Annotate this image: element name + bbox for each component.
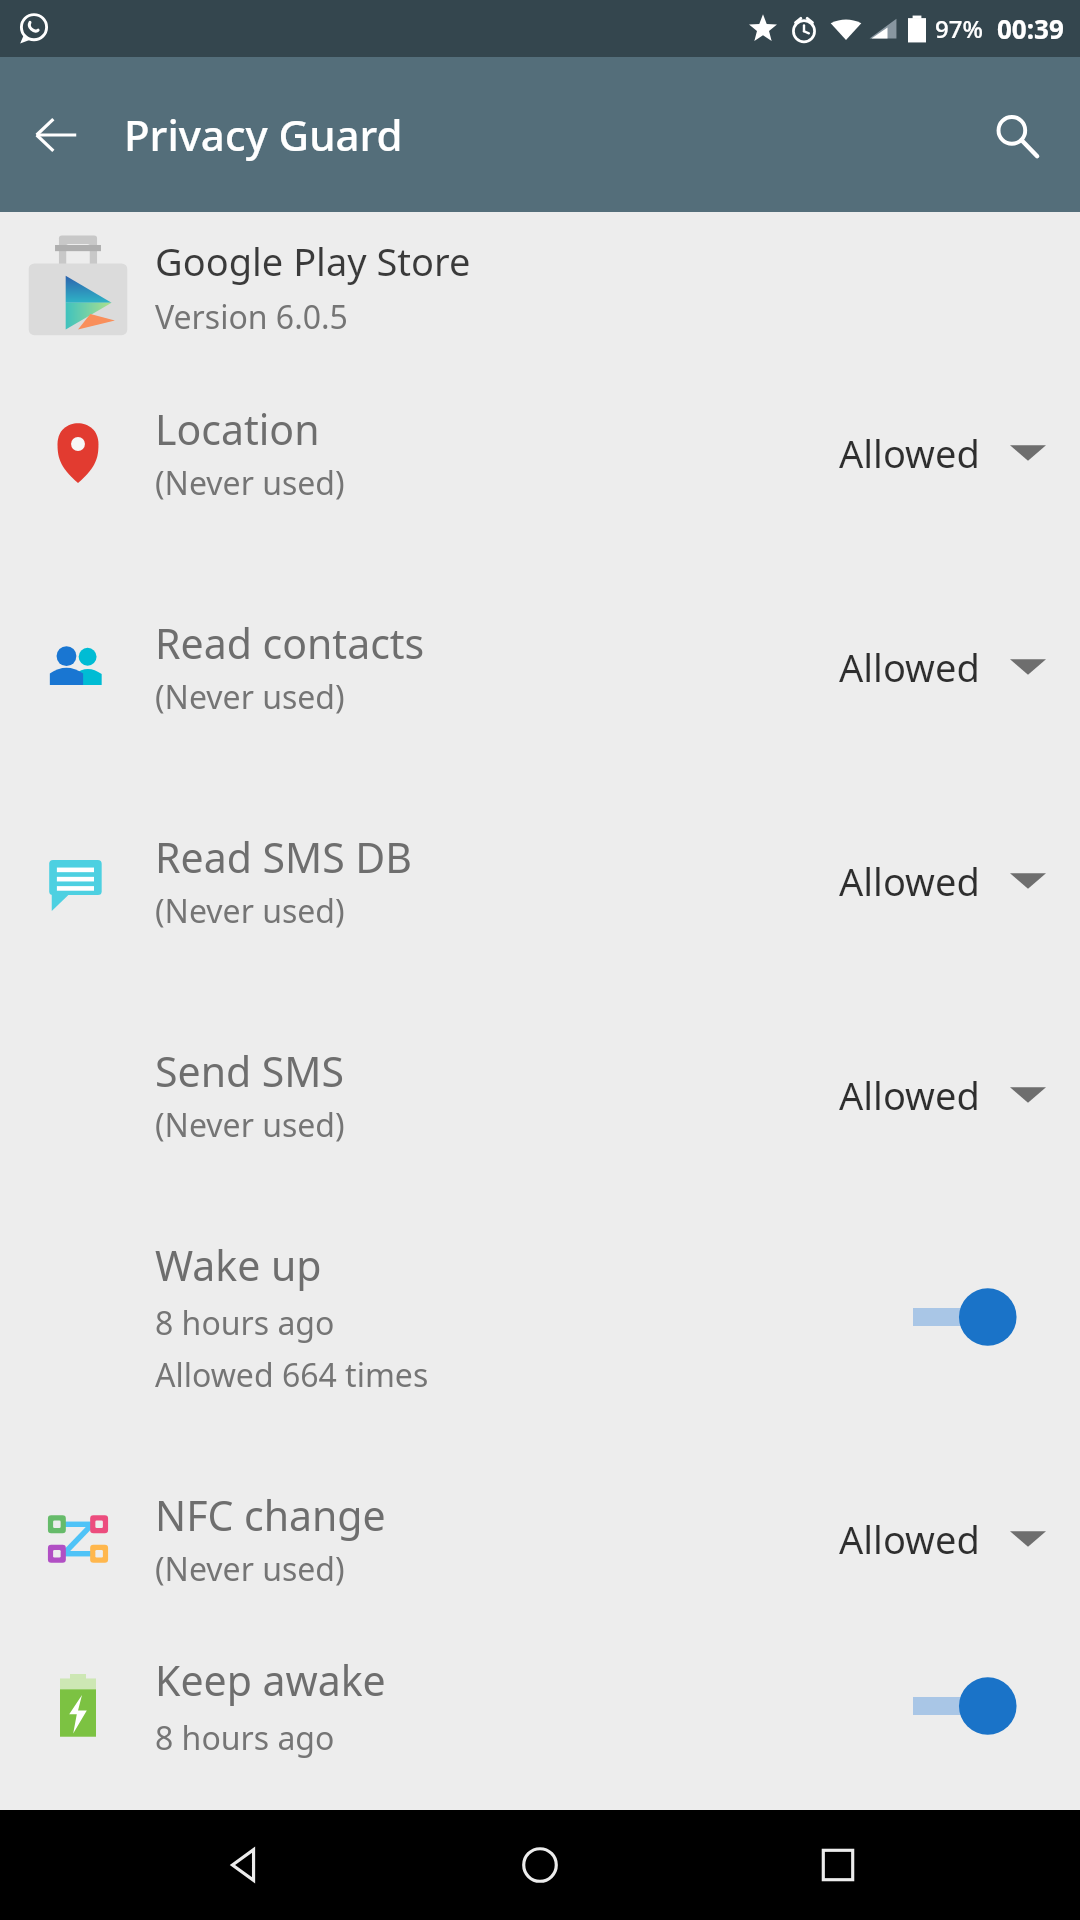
staticText: Send SMS xyxy=(155,1043,345,1099)
staticText: 8 hours ago xyxy=(155,1301,335,1345)
button[interactable]: Google Play Store xyxy=(0,228,1080,346)
staticText: Read contacts xyxy=(155,615,425,671)
button[interactable]: Wake up xyxy=(0,1202,1080,1432)
button[interactable]: Search xyxy=(978,97,1054,173)
staticText: (Never used) xyxy=(155,675,345,719)
button[interactable]: Allowed xyxy=(839,855,1046,907)
button[interactable]: Keep awake xyxy=(0,1646,1080,1766)
button[interactable]: Back xyxy=(188,1810,298,1920)
button[interactable]: Allowed xyxy=(839,427,1046,479)
button[interactable]: Send SMS xyxy=(0,988,1080,1202)
staticText: 8 hours ago xyxy=(155,1716,335,1760)
staticText: Location xyxy=(155,401,320,457)
staticText: (Never used) xyxy=(155,461,345,505)
staticText: Allowed 664 times xyxy=(155,1353,429,1397)
staticText: (Never used) xyxy=(155,1103,345,1147)
staticText: NFC change xyxy=(155,1487,386,1543)
staticText: Google Play Store xyxy=(155,235,471,287)
staticText: Allowed xyxy=(839,641,980,693)
button[interactable]: Back xyxy=(20,99,92,171)
button[interactable]: Toggle Keep awake xyxy=(913,1670,1028,1742)
staticText: (Never used) xyxy=(155,1547,345,1591)
button[interactable]: Allowed xyxy=(839,641,1046,693)
staticText: 97% xyxy=(935,12,983,45)
staticText: Privacy Guard xyxy=(124,106,403,163)
staticText: Allowed xyxy=(839,1513,980,1565)
button[interactable]: NFC change xyxy=(0,1432,1080,1646)
button[interactable]: Recent apps xyxy=(783,1810,893,1920)
staticText: Version 6.0.5 xyxy=(155,295,348,339)
button[interactable]: Read contacts xyxy=(0,560,1080,774)
staticText: Allowed xyxy=(839,1069,980,1121)
staticText: (Never used) xyxy=(155,889,345,933)
staticText: Allowed xyxy=(839,427,980,479)
staticText: Wake up xyxy=(155,1237,322,1293)
button[interactable]: Allowed xyxy=(839,1069,1046,1121)
staticText: 00:39 xyxy=(997,11,1064,46)
button[interactable]: Read SMS DB xyxy=(0,774,1080,988)
staticText: Keep awake xyxy=(155,1652,386,1708)
button[interactable]: Toggle Wake up xyxy=(913,1281,1028,1353)
staticText: Allowed xyxy=(839,855,980,907)
button[interactable]: Home xyxy=(485,1810,595,1920)
button[interactable]: Allowed xyxy=(839,1513,1046,1565)
button[interactable]: Location xyxy=(0,346,1080,560)
staticText: Read SMS DB xyxy=(155,829,412,885)
